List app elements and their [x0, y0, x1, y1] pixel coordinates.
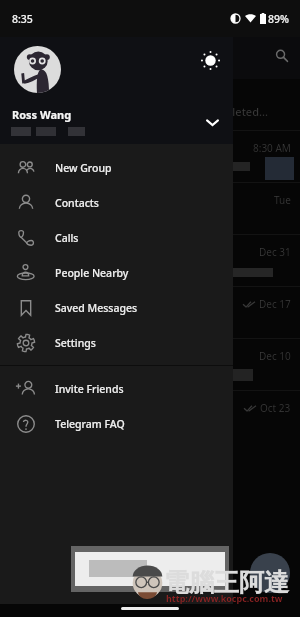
button[interactable]: Dec 17	[0, 286, 300, 338]
button[interactable]: Tue	[0, 182, 300, 234]
button[interactable]: New message	[250, 553, 290, 593]
staticText: People Nearby	[55, 266, 129, 280]
staticText: 89%	[268, 12, 289, 26]
staticText: New Group	[55, 161, 112, 175]
button[interactable]: Telegram FAQ	[0, 406, 233, 441]
button[interactable]: Dec 31	[0, 234, 300, 286]
button[interactable]: Contacts	[0, 185, 233, 220]
staticText: Calls	[55, 231, 79, 245]
button[interactable]: People Nearby	[0, 255, 233, 290]
staticText: 8:35	[12, 12, 33, 26]
staticText: 電腦王阿達	[164, 567, 289, 598]
staticText: Saved Messages	[55, 301, 138, 315]
staticText: Telegram FAQ	[55, 417, 125, 431]
staticText: Deleted...	[218, 104, 268, 119]
button[interactable]: Expand accounts	[198, 108, 226, 136]
staticText: Contacts	[55, 196, 99, 210]
staticText: Ross Wang	[12, 107, 72, 122]
staticText: Dec 17	[259, 297, 291, 311]
button[interactable]: Dec 10	[0, 338, 300, 390]
staticText: Dec 10	[259, 349, 291, 363]
button[interactable]: Toggle night mode	[196, 46, 225, 75]
staticText: 8:30 AM	[253, 141, 291, 155]
button[interactable]: Profile photo	[14, 46, 61, 93]
button[interactable]: 8:30 AM	[0, 130, 300, 182]
staticText: Dec 31	[259, 245, 291, 259]
staticText: Tue	[274, 193, 291, 207]
button[interactable]: Calls	[0, 220, 233, 255]
button[interactable]: Search	[269, 43, 295, 69]
button[interactable]: Settings	[0, 325, 233, 360]
button[interactable]: Invite Friends	[0, 371, 233, 406]
staticText: http://www.kocpc.com.tw	[166, 592, 283, 604]
staticText: Oct 23	[260, 401, 291, 415]
button[interactable]: Oct 23	[0, 390, 300, 442]
button[interactable]: New Group	[0, 150, 233, 185]
staticText: Invite Friends	[55, 382, 124, 396]
button[interactable]: Saved Messages	[0, 290, 233, 325]
staticText: Settings	[55, 336, 96, 350]
